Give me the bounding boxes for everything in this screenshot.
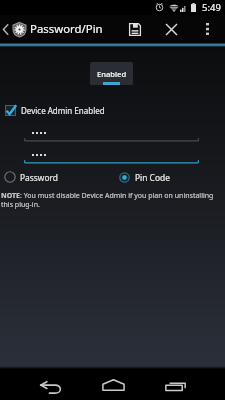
button[interactable]: Password: [2, 170, 62, 184]
button[interactable]: Cancel: [153, 15, 189, 43]
button[interactable]: Device Admin Enabled: [3, 104, 111, 117]
staticText: Password/Pin: [30, 21, 103, 37]
staticText: Enabled: [97, 69, 127, 79]
button[interactable]: Back: [25, 369, 75, 400]
staticText: Device Admin Enabled: [21, 105, 105, 116]
button[interactable]: [24, 132, 199, 142]
staticText: NOTE: You must disable Device Admin if y…: [1, 191, 215, 209]
button[interactable]: Pin Code: [119, 171, 174, 184]
button[interactable]: Save: [117, 15, 153, 43]
button[interactable]: Enabled: [90, 62, 133, 85]
button[interactable]: Home: [88, 369, 138, 400]
staticText: 5:49: [202, 1, 221, 14]
button[interactable]: Password/Pin: [0, 15, 109, 43]
button[interactable]: [24, 154, 199, 164]
button[interactable]: Recents: [150, 369, 200, 400]
staticText: Pin Code: [135, 172, 170, 183]
staticText: Password: [20, 172, 58, 183]
button[interactable]: More options: [189, 15, 225, 43]
